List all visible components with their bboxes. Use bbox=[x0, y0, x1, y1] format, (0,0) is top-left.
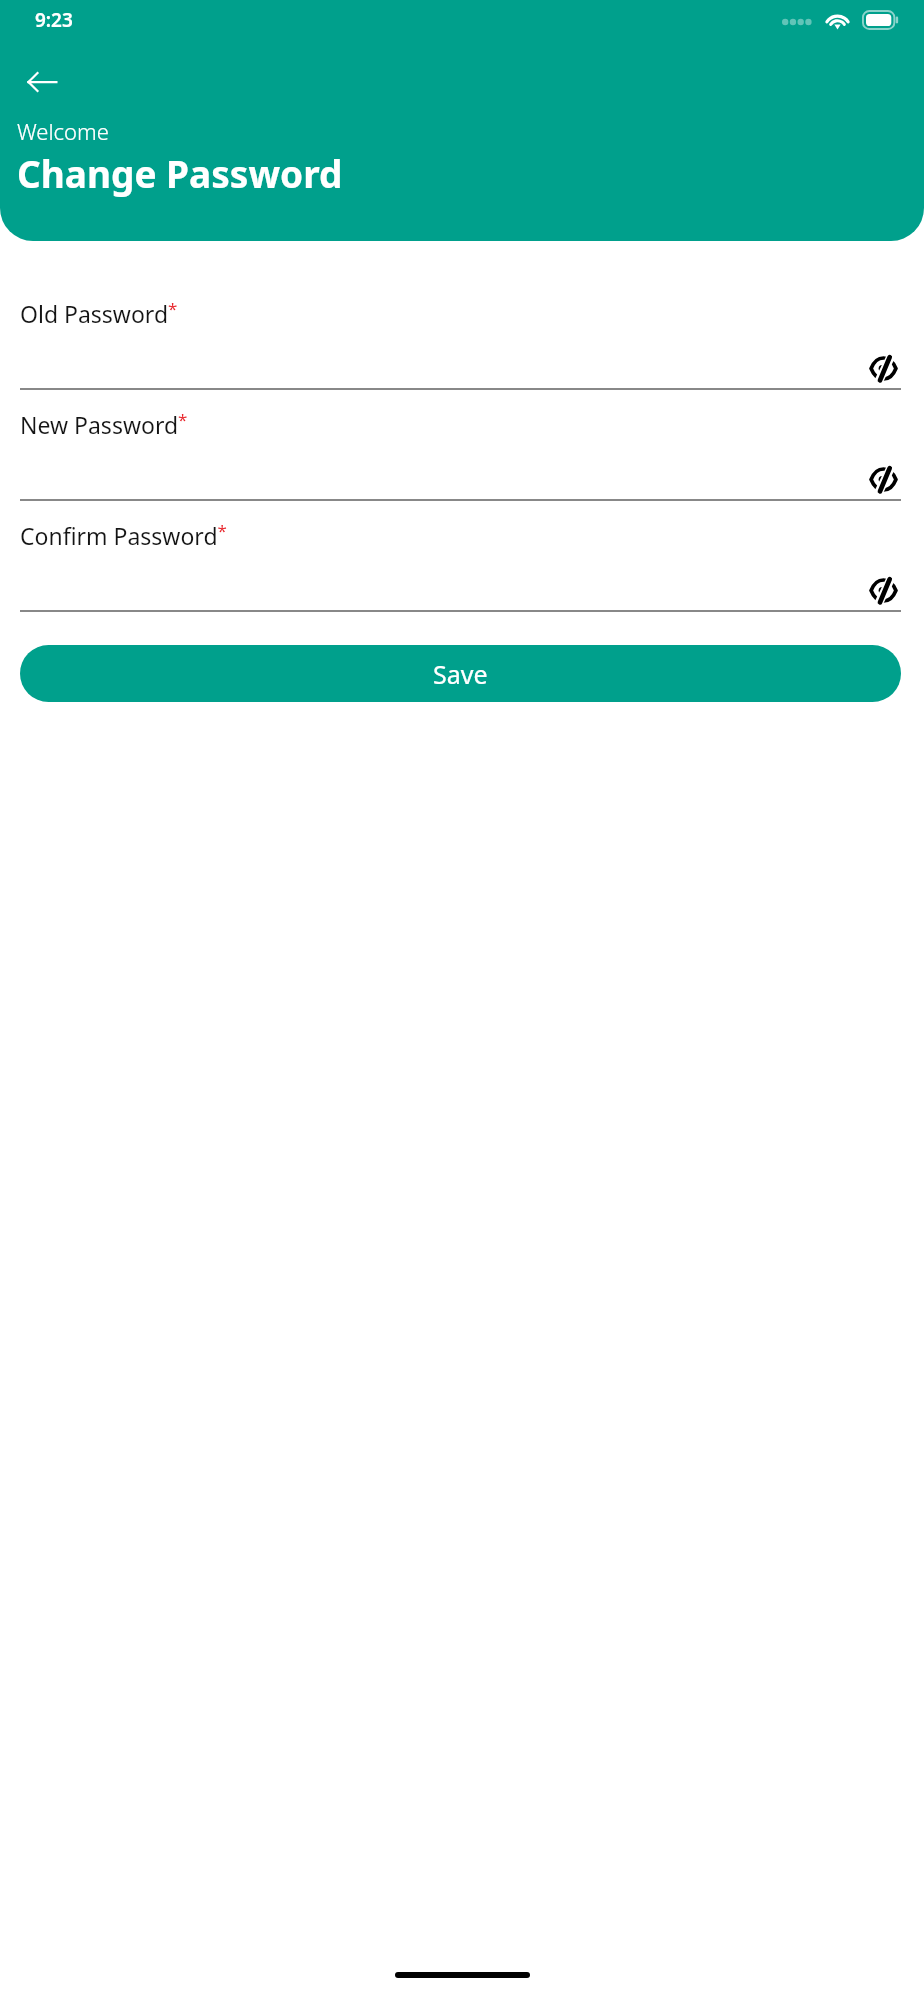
button[interactable]: Save bbox=[20, 645, 901, 702]
staticText: Confirm Password* bbox=[20, 519, 227, 552]
button[interactable]: Show Old Password bbox=[20, 330, 901, 388]
staticText: 9:23 bbox=[35, 7, 73, 33]
button[interactable]: Back bbox=[14, 54, 70, 110]
staticText: Change Password bbox=[17, 148, 343, 198]
staticText: New Password* bbox=[20, 408, 188, 441]
staticText: Old Password* bbox=[20, 297, 178, 330]
button[interactable]: Show Confirm Password bbox=[20, 552, 901, 610]
staticText: Save bbox=[433, 657, 488, 691]
button[interactable]: Show New Password bbox=[20, 441, 901, 499]
staticText: Welcome bbox=[17, 116, 109, 146]
